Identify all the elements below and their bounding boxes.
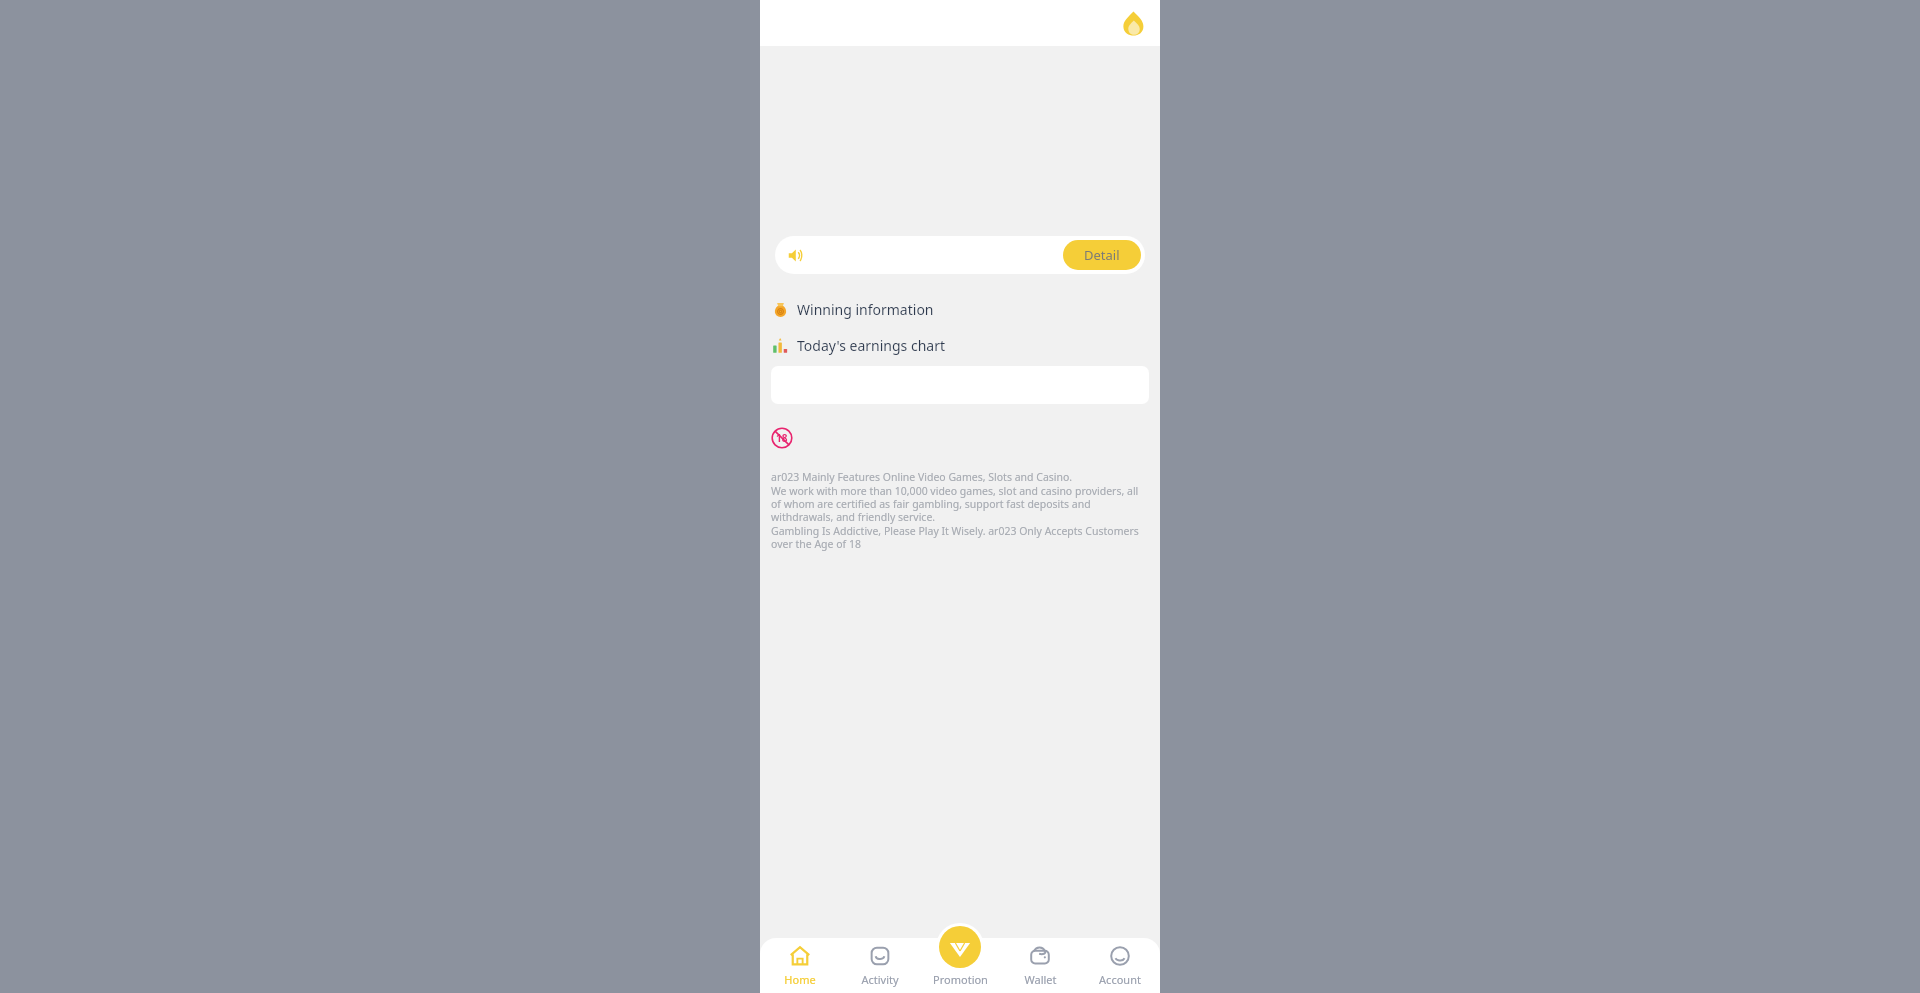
button[interactable]: Account bbox=[1080, 938, 1160, 993]
staticText: We work with more than 10,000 video game… bbox=[771, 484, 1149, 524]
button[interactable]: Detail bbox=[1063, 240, 1141, 270]
button[interactable]: Today's earnings chart bbox=[760, 334, 1160, 356]
staticText: Gambling Is Addictive, Please Play It Wi… bbox=[771, 524, 1149, 551]
button[interactable]: Activity bbox=[840, 938, 920, 993]
staticText: ar023 Mainly Features Online Video Games… bbox=[771, 470, 1073, 484]
staticText: 18 bbox=[776, 431, 788, 445]
button[interactable]: Winning information bbox=[760, 298, 1160, 320]
button[interactable]: 18 plus only bbox=[771, 427, 793, 449]
staticText: Detail bbox=[1084, 246, 1120, 264]
button[interactable]: Promotion bbox=[939, 926, 981, 968]
button[interactable]: Promotion bbox=[920, 938, 1000, 993]
staticText: Today's earnings chart bbox=[797, 336, 945, 355]
staticText: Home bbox=[784, 972, 816, 987]
button[interactable]: Hot events bbox=[1120, 10, 1146, 36]
staticText: Wallet bbox=[1024, 972, 1057, 987]
staticText: Account bbox=[1099, 972, 1141, 987]
button[interactable]: Home bbox=[760, 938, 840, 993]
button[interactable]: Wallet bbox=[1000, 938, 1080, 993]
staticText: Promotion bbox=[933, 972, 988, 987]
staticText: Activity bbox=[861, 972, 899, 987]
staticText: Winning information bbox=[797, 300, 934, 319]
button[interactable]: Detail bbox=[775, 236, 1145, 274]
